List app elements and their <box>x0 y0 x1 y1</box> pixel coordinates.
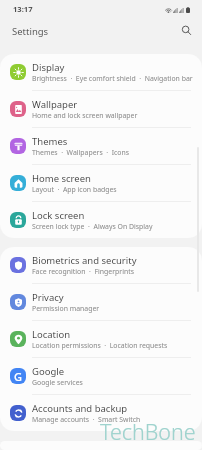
staticText: Permission manager <box>32 304 100 313</box>
staticText: Brightness · Eye comfort shield · Naviga… <box>32 74 193 83</box>
staticText: Wallpaper <box>32 98 78 111</box>
button[interactable]: Themes <box>0 128 202 164</box>
button[interactable]: Home screen <box>0 165 202 201</box>
staticText: Home and lock screen wallpaper <box>32 111 138 120</box>
button[interactable]: Search <box>174 18 198 42</box>
button[interactable]: Location <box>0 321 202 357</box>
staticText: Manage accounts · Smart Switch <box>32 415 141 424</box>
staticText: Lock screen <box>32 209 85 222</box>
button[interactable]: Lock screen <box>0 202 202 238</box>
button[interactable]: Biometrics and security <box>0 247 202 283</box>
button[interactable]: Privacy <box>0 284 202 320</box>
button[interactable]: G <box>0 358 202 394</box>
staticText: Location <box>32 328 71 341</box>
button[interactable]: Wallpaper <box>0 91 202 127</box>
staticText: Privacy <box>32 291 64 304</box>
staticText: TechBone <box>100 417 196 446</box>
staticText: G <box>14 369 22 384</box>
staticText: Biometrics and security <box>32 254 137 267</box>
staticText: Layout · App icon badges <box>32 185 117 194</box>
staticText: Google services <box>32 378 83 387</box>
button[interactable]: Display <box>0 54 202 90</box>
staticText: Location permissions · Location requests <box>32 341 168 350</box>
staticText: Face recognition · Fingerprints <box>32 267 134 276</box>
staticText: Themes · Wallpapers · Icons <box>32 148 130 157</box>
staticText: Accounts and backup <box>32 402 128 415</box>
staticText: Settings <box>12 25 49 38</box>
staticText: 13:17 <box>13 4 33 14</box>
staticText: Screen lock type · Always On Display <box>32 222 153 231</box>
staticText: Themes <box>32 135 68 148</box>
staticText: Home screen <box>32 172 91 185</box>
button[interactable]: Accounts and backup <box>0 395 202 431</box>
staticText: Display <box>32 61 65 74</box>
staticText: Google <box>32 365 65 378</box>
